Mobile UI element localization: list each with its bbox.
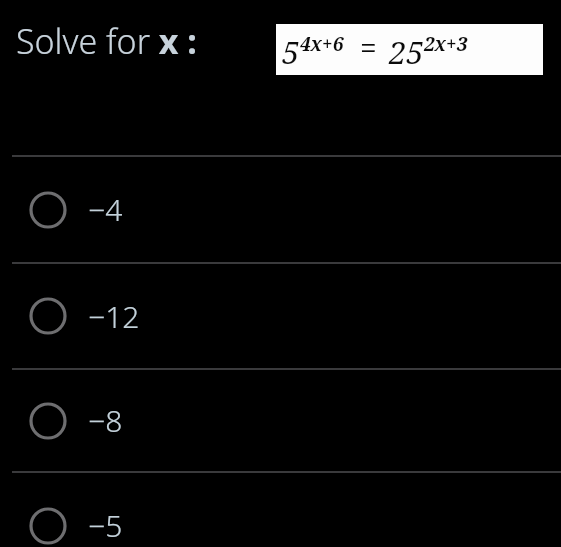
staticText: −4 — [88, 189, 123, 230]
staticText: = — [360, 27, 377, 68]
staticText: −12 — [88, 296, 140, 337]
button[interactable]: −5 — [0, 473, 561, 547]
staticText: Solve for x : — [16, 18, 197, 64]
staticText: 2x+3 — [424, 31, 468, 57]
staticText: 4x+6 — [300, 31, 344, 57]
staticText: −5 — [88, 505, 123, 546]
button[interactable]: −4 — [0, 157, 561, 262]
staticText: −8 — [88, 400, 123, 441]
staticText: 25 — [389, 31, 424, 73]
staticText: 5 — [282, 31, 300, 73]
button[interactable]: −8 — [0, 370, 561, 471]
button[interactable]: −12 — [0, 264, 561, 368]
